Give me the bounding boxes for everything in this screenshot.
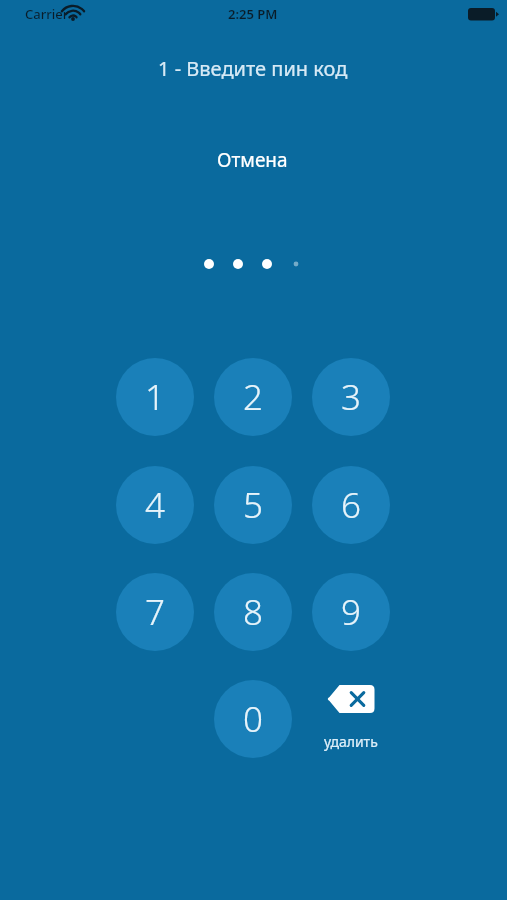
- staticText: 9: [341, 588, 361, 636]
- button[interactable]: 8: [214, 573, 292, 651]
- staticText: 5: [243, 481, 263, 529]
- button[interactable]: удалить: [307, 682, 395, 752]
- staticText: Отмена: [217, 147, 288, 173]
- staticText: 0: [243, 695, 263, 743]
- staticText: 2:25 PM: [228, 5, 278, 23]
- staticText: 6: [341, 481, 361, 529]
- staticText: 8: [243, 588, 263, 636]
- button[interactable]: 4: [116, 466, 194, 544]
- staticText: удалить: [324, 732, 378, 751]
- button[interactable]: Отмена: [217, 147, 288, 173]
- button[interactable]: 2: [214, 358, 292, 436]
- staticText: 2: [243, 373, 263, 421]
- button[interactable]: 5: [214, 466, 292, 544]
- staticText: Carrier: [25, 5, 69, 23]
- staticText: 1 - Введите пин код: [158, 55, 348, 82]
- button[interactable]: 7: [116, 573, 194, 651]
- staticText: 3: [341, 373, 361, 421]
- button[interactable]: 9: [312, 573, 390, 651]
- button[interactable]: 6: [312, 466, 390, 544]
- button[interactable]: 3: [312, 358, 390, 436]
- staticText: 4: [145, 481, 165, 529]
- button[interactable]: 1: [116, 358, 194, 436]
- staticText: 1: [145, 373, 165, 421]
- staticText: 7: [145, 588, 165, 636]
- button[interactable]: 0: [214, 680, 292, 758]
